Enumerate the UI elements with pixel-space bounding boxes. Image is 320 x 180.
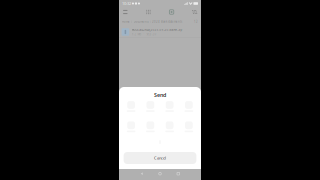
- button[interactable]: Back: [140, 169, 143, 178]
- staticText: 2024 Bank statements: [152, 20, 182, 23]
- button[interactable]: Share target: [121, 121, 141, 132]
- staticText: Cancel: [154, 155, 166, 161]
- button[interactable]: Home: [122, 20, 130, 23]
- button[interactable]: Share target: [141, 121, 160, 132]
- staticText: MULTI-ALL-FILES_2025-09-20-BANK.zip: [132, 28, 183, 31]
- button[interactable]: Recent apps: [177, 169, 180, 178]
- button[interactable]: Share target: [160, 101, 179, 112]
- button[interactable]: Documents: [133, 20, 148, 23]
- staticText: Home: [122, 20, 130, 23]
- staticText: 10:32: [122, 1, 131, 6]
- button[interactable]: Sort: [121, 7, 130, 16]
- button[interactable]: Share target: [141, 101, 160, 112]
- button[interactable]: Share target: [179, 101, 198, 112]
- button[interactable]: More options: [190, 7, 199, 16]
- button[interactable]: Select all: [167, 7, 176, 16]
- button[interactable]: Share target: [179, 121, 198, 132]
- staticText: 9.2 MB · Sep 20: [132, 32, 157, 36]
- button[interactable]: MULTI-ALL-FILES_2025-09-20-BANK.zip: [119, 26, 201, 37]
- staticText: 12: [194, 20, 198, 23]
- staticText: Send: [154, 91, 166, 99]
- button[interactable]: Cancel: [124, 152, 196, 164]
- staticText: Documents: [133, 20, 148, 23]
- button[interactable]: Share target: [121, 101, 141, 112]
- button[interactable]: Grid view: [144, 7, 153, 16]
- button[interactable]: Share target: [160, 121, 179, 132]
- button[interactable]: Home: [159, 169, 161, 178]
- button[interactable]: 2024 Bank statements: [152, 20, 182, 23]
